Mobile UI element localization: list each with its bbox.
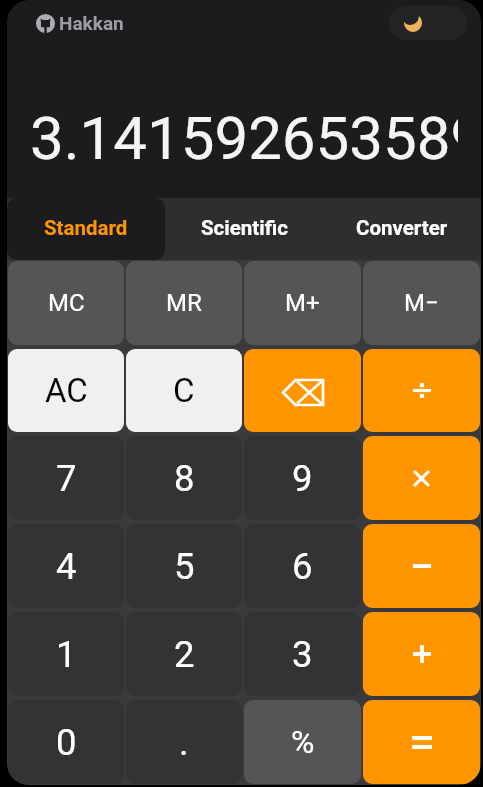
staticText: 1 — [56, 633, 77, 676]
button[interactable]: Multiply — [363, 436, 480, 520]
button[interactable]: Standard — [7, 198, 165, 260]
staticText: C — [173, 371, 195, 410]
button[interactable]: Toggle dark mode — [389, 6, 467, 40]
button[interactable]: 8 — [126, 436, 242, 520]
staticText: Hakkan — [59, 12, 124, 34]
button[interactable]: Equals — [363, 700, 480, 784]
button[interactable]: 6 — [244, 524, 361, 608]
button[interactable]: M− — [363, 261, 480, 345]
button[interactable]: Converter — [323, 198, 481, 260]
staticText: Converter — [356, 216, 448, 240]
staticText: M− — [404, 289, 439, 317]
button[interactable]: Add — [363, 612, 480, 696]
staticText: 7 — [56, 457, 77, 500]
staticText: . — [179, 721, 189, 764]
staticText: MC — [48, 289, 85, 317]
button[interactable]: Hakkan — [36, 12, 124, 34]
button[interactable]: 2 — [126, 612, 242, 696]
staticText: 3.141592653589793 — [30, 103, 458, 173]
button[interactable]: C — [126, 349, 242, 432]
staticText: 0 — [56, 721, 77, 764]
button[interactable]: AC — [8, 349, 124, 432]
button[interactable]: Scientific — [165, 198, 323, 260]
button[interactable]: % — [244, 700, 361, 784]
staticText: 5 — [174, 545, 195, 588]
staticText: 4 — [56, 545, 77, 588]
staticText: Standard — [44, 216, 128, 240]
button[interactable]: Backspace — [244, 349, 361, 432]
staticText: 8 — [174, 457, 195, 500]
button[interactable]: 3 — [244, 612, 361, 696]
staticText: Scientific — [201, 216, 288, 240]
button[interactable]: 0 — [8, 700, 124, 784]
button[interactable]: MR — [126, 261, 242, 345]
button[interactable]: 5 — [126, 524, 242, 608]
staticText: % — [291, 723, 315, 761]
button[interactable]: MC — [8, 261, 124, 345]
staticText: AC — [45, 371, 88, 410]
staticText: 3 — [292, 633, 313, 676]
staticText: MR — [166, 289, 202, 317]
button[interactable]: M+ — [244, 261, 361, 345]
button[interactable]: 7 — [8, 436, 124, 520]
button[interactable]: Subtract — [363, 524, 480, 608]
button[interactable]: 9 — [244, 436, 361, 520]
staticText: M+ — [285, 289, 320, 317]
button[interactable]: 1 — [8, 612, 124, 696]
staticText: 2 — [174, 633, 195, 676]
button[interactable]: . — [126, 700, 242, 784]
button[interactable]: Divide — [363, 349, 480, 432]
staticText: 6 — [292, 545, 313, 588]
button[interactable]: 4 — [8, 524, 124, 608]
staticText: 9 — [292, 457, 313, 500]
